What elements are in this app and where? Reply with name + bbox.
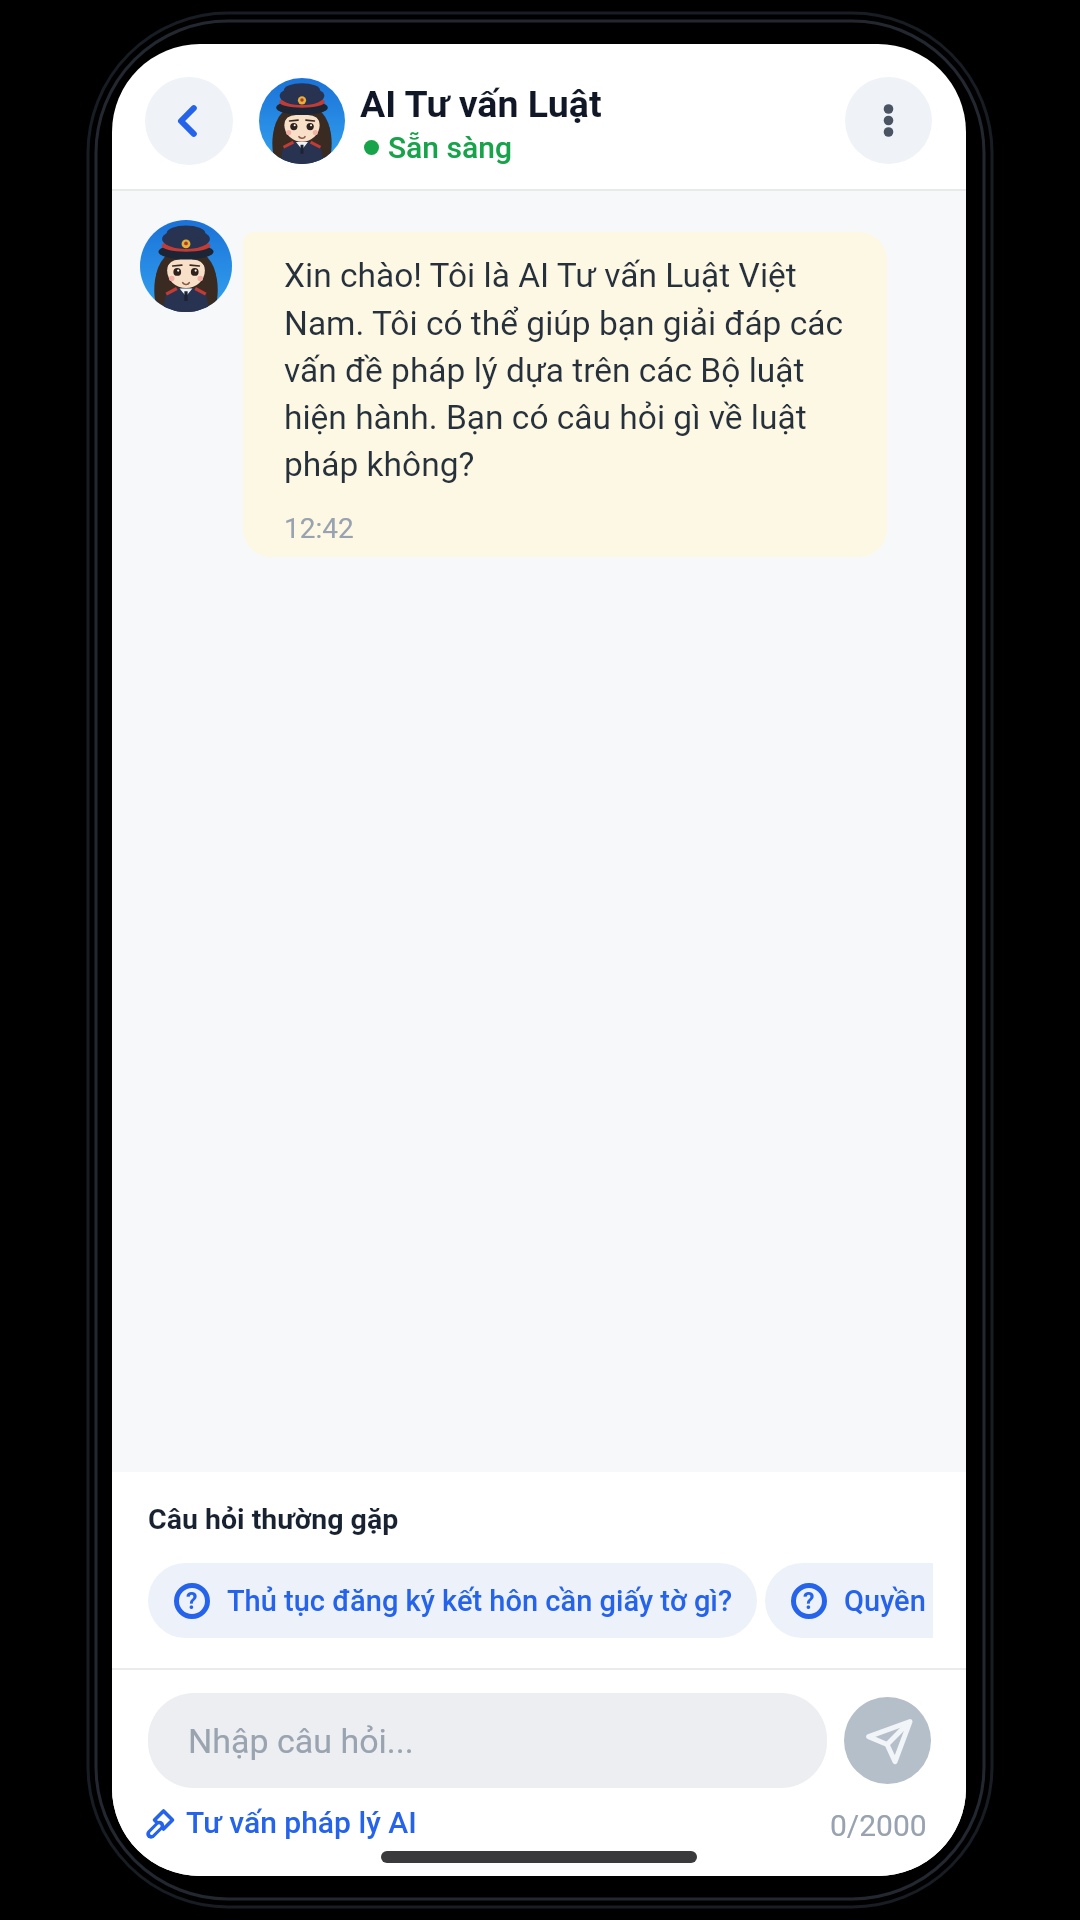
button[interactable] bbox=[145, 77, 233, 165]
staticText: Thủ tục đăng ký kết hôn cần giấy tờ gì? bbox=[227, 1584, 733, 1618]
staticText: Nhập câu hỏi... bbox=[188, 1721, 414, 1761]
staticText: 0/2000 bbox=[830, 1808, 927, 1843]
staticText: ? bbox=[803, 1588, 815, 1615]
staticText: Xin chào! Tôi là AI Tư vấn Luật Việt Nam… bbox=[284, 256, 844, 484]
staticText: Tư vấn pháp lý AI bbox=[186, 1805, 417, 1839]
staticText: Câu hỏi thường gặp bbox=[148, 1503, 399, 1536]
staticText: Quyền tự do bbox=[844, 1584, 933, 1618]
button[interactable]: ? bbox=[765, 1563, 933, 1638]
staticText: AI Tư vấn Luật bbox=[360, 82, 602, 126]
staticText: ? bbox=[186, 1588, 198, 1615]
staticText: 12:42 bbox=[284, 512, 354, 545]
staticText: Sẵn sàng bbox=[388, 130, 512, 165]
button[interactable] bbox=[844, 1697, 931, 1784]
button[interactable] bbox=[845, 77, 932, 164]
button[interactable]: ? bbox=[148, 1563, 757, 1638]
button[interactable]: Nhập câu hỏi... bbox=[148, 1693, 827, 1788]
button[interactable]: Tư vấn pháp lý AI bbox=[147, 1805, 417, 1839]
